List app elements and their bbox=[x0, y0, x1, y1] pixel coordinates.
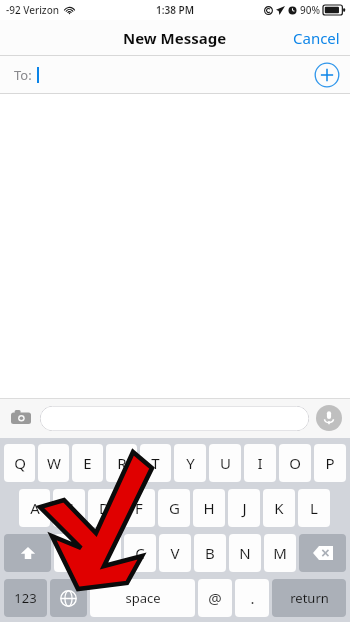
staticText: I bbox=[257, 453, 263, 473]
button[interactable]: @ bbox=[198, 579, 232, 617]
staticText: S bbox=[65, 498, 74, 518]
button[interactable]: return bbox=[272, 579, 346, 617]
button[interactable]: U bbox=[209, 444, 241, 482]
staticText: F bbox=[135, 498, 143, 518]
staticText: Z bbox=[66, 543, 75, 563]
button[interactable]: V bbox=[159, 534, 191, 572]
button[interactable]: A bbox=[19, 489, 50, 527]
staticText: A bbox=[30, 498, 40, 518]
staticText: Q bbox=[14, 453, 26, 473]
button[interactable]: B bbox=[194, 534, 226, 572]
button[interactable] bbox=[40, 406, 309, 431]
staticText: H bbox=[203, 498, 215, 518]
staticText: T bbox=[151, 453, 160, 473]
staticText: space bbox=[125, 589, 161, 607]
staticText: D bbox=[99, 498, 110, 518]
button[interactable]: space bbox=[90, 579, 195, 617]
button[interactable]: T bbox=[140, 444, 171, 482]
button[interactable]: F bbox=[123, 489, 155, 527]
button[interactable]: E bbox=[72, 444, 103, 482]
staticText: Y bbox=[186, 453, 195, 473]
staticText: 90% bbox=[300, 3, 320, 17]
button[interactable]: X bbox=[89, 534, 121, 572]
button[interactable]: R bbox=[106, 444, 137, 482]
button[interactable]: . bbox=[235, 579, 269, 617]
button[interactable]: O bbox=[279, 444, 311, 482]
button[interactable]: Switch keyboard bbox=[50, 579, 87, 617]
staticText: K bbox=[274, 498, 284, 518]
staticText: P bbox=[325, 453, 335, 473]
button[interactable]: G bbox=[158, 489, 190, 527]
staticText: B bbox=[205, 543, 215, 563]
button[interactable]: Y bbox=[174, 444, 206, 482]
staticText: U bbox=[220, 453, 231, 473]
staticText: R bbox=[117, 453, 127, 473]
button[interactable]: P bbox=[314, 444, 346, 482]
staticText: W bbox=[47, 453, 61, 473]
staticText: L bbox=[310, 498, 318, 518]
staticText: Cancel bbox=[293, 28, 340, 48]
button[interactable]: Add contact bbox=[314, 62, 340, 88]
staticText: V bbox=[170, 543, 180, 563]
button[interactable]: S bbox=[53, 489, 85, 527]
button[interactable]: M bbox=[264, 534, 296, 572]
staticText: . bbox=[250, 588, 255, 608]
button[interactable]: Q bbox=[4, 444, 35, 482]
staticText: X bbox=[101, 543, 110, 563]
staticText: M bbox=[273, 543, 287, 563]
staticText: @ bbox=[208, 588, 222, 608]
button[interactable]: W bbox=[38, 444, 69, 482]
staticText: -92 Verizon bbox=[6, 3, 60, 17]
button[interactable]: C bbox=[124, 534, 156, 572]
button[interactable]: K bbox=[263, 489, 295, 527]
staticText: N bbox=[239, 543, 251, 563]
button[interactable]: D bbox=[88, 489, 120, 527]
button[interactable]: H bbox=[193, 489, 225, 527]
button[interactable]: N bbox=[229, 534, 261, 572]
staticText: To: bbox=[14, 66, 32, 84]
button[interactable]: Shift bbox=[4, 534, 51, 572]
staticText: 123 bbox=[14, 589, 37, 607]
staticText: E bbox=[83, 453, 92, 473]
staticText: O bbox=[289, 453, 301, 473]
staticText: return bbox=[290, 589, 329, 607]
button[interactable]: J bbox=[228, 489, 260, 527]
staticText: 1:38 PM bbox=[156, 3, 194, 17]
button[interactable]: 123 bbox=[4, 579, 47, 617]
staticText: C bbox=[135, 543, 145, 563]
button[interactable]: Dictate bbox=[316, 405, 342, 431]
staticText: G bbox=[169, 498, 180, 518]
button[interactable]: I bbox=[244, 444, 276, 482]
button[interactable]: Backspace bbox=[299, 534, 346, 572]
button[interactable]: Cancel bbox=[283, 22, 350, 54]
button[interactable]: L bbox=[298, 489, 330, 527]
staticText: J bbox=[242, 498, 247, 518]
button[interactable]: Z bbox=[54, 534, 86, 572]
staticText: New Message bbox=[123, 28, 227, 48]
button[interactable]: Camera bbox=[8, 405, 34, 431]
